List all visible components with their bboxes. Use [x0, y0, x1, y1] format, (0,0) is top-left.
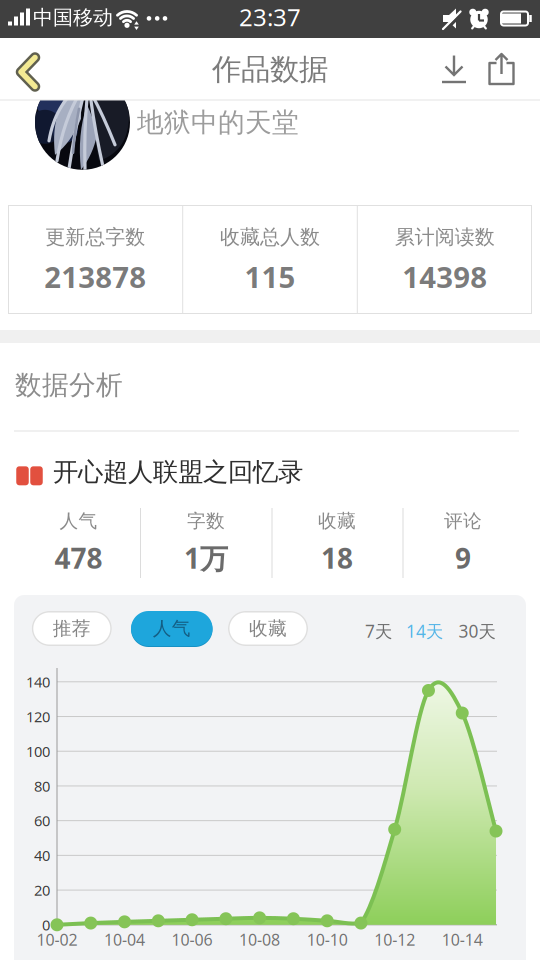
- staticText: 23:37: [239, 1, 301, 33]
- button[interactable]: [6, 50, 50, 94]
- button[interactable]: 推荐: [31, 610, 113, 646]
- staticText: 累计阅读数: [395, 225, 495, 249]
- staticText: 中国移动: [33, 5, 113, 30]
- staticText: 收藏: [318, 509, 356, 532]
- staticText: 14398: [402, 257, 487, 296]
- staticText: 1万: [184, 539, 228, 577]
- staticText: 30天: [458, 619, 495, 642]
- button[interactable]: 人气: [131, 610, 213, 646]
- staticText: 140: [26, 672, 50, 692]
- staticText: 100: [26, 741, 50, 761]
- button[interactable]: 14天: [399, 614, 449, 648]
- staticText: 10-02: [36, 929, 77, 950]
- staticText: 字数: [187, 509, 225, 532]
- staticText: 数据分析: [15, 369, 123, 401]
- button[interactable]: 开心超人联盟之回忆录: [0, 0, 540, 960]
- staticText: 0: [42, 915, 50, 935]
- staticText: 评论: [444, 509, 482, 532]
- button[interactable]: 30天: [452, 614, 502, 648]
- staticText: 9: [455, 539, 471, 577]
- staticText: 开心超人联盟之回忆录: [53, 456, 303, 487]
- staticText: 作品数据: [212, 51, 328, 87]
- staticText: 80: [34, 776, 50, 796]
- staticText: 18: [321, 539, 353, 577]
- staticText: 更新总字数: [45, 225, 145, 249]
- staticText: 收藏: [249, 617, 287, 640]
- button[interactable]: [486, 53, 516, 87]
- staticText: 人气: [153, 617, 191, 640]
- staticText: 213878: [44, 257, 146, 296]
- staticText: 20: [34, 880, 50, 900]
- staticText: 478: [54, 539, 102, 577]
- staticText: 40: [34, 846, 50, 865]
- staticText: 10-10: [307, 929, 348, 950]
- staticText: 推荐: [53, 617, 91, 640]
- button[interactable]: 收藏: [227, 610, 309, 646]
- staticText: 10-04: [104, 929, 145, 950]
- staticText: 10-12: [374, 929, 415, 950]
- button[interactable]: 7天: [356, 614, 400, 648]
- staticText: 60: [34, 811, 50, 830]
- button[interactable]: [432, 53, 476, 87]
- staticText: 10-06: [172, 929, 213, 950]
- staticText: 10-08: [239, 929, 280, 950]
- staticText: 人气: [59, 509, 97, 532]
- staticText: 10-14: [442, 929, 483, 950]
- staticText: 收藏总人数: [220, 225, 320, 249]
- staticText: 14天: [406, 619, 443, 642]
- staticText: 7天: [365, 619, 392, 642]
- staticText: 115: [244, 257, 295, 296]
- staticText: 地狱中的天堂: [137, 106, 299, 139]
- staticText: 120: [26, 707, 50, 726]
